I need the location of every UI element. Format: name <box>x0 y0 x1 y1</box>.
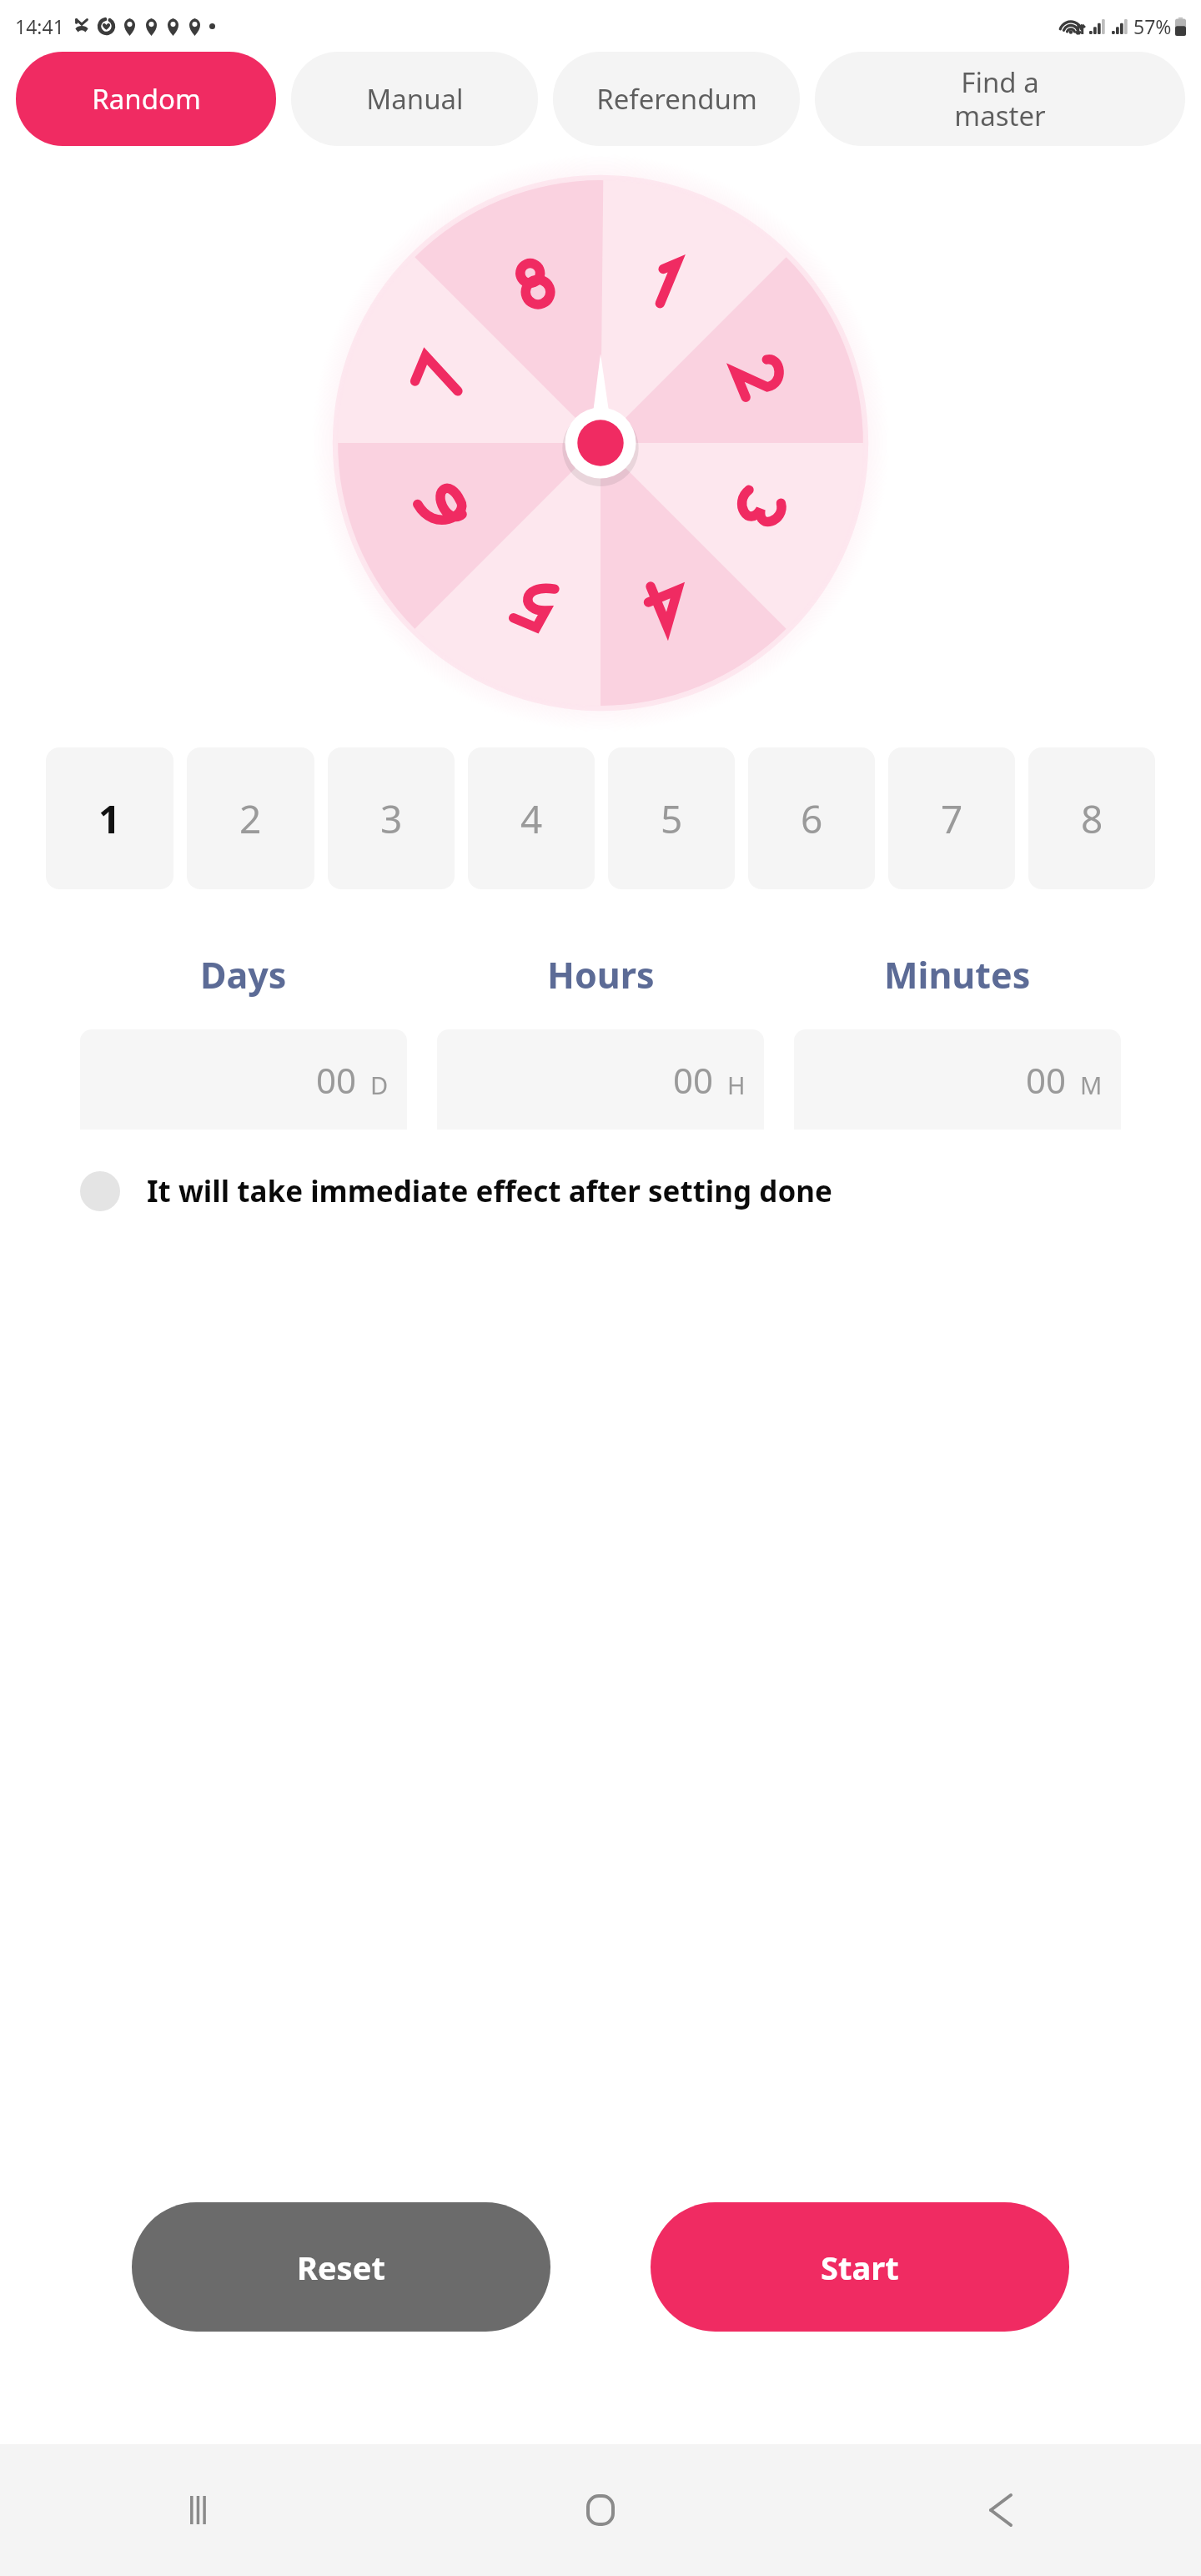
button[interactable]: 1 <box>46 747 173 889</box>
button[interactable]: Home <box>400 2444 801 2576</box>
staticText: 6 <box>801 792 823 845</box>
staticText: Manual <box>366 80 464 118</box>
button[interactable]: 7 <box>888 747 1015 889</box>
staticText: 14:41 <box>15 13 64 39</box>
button[interactable]: Recent apps <box>0 2444 400 2576</box>
button[interactable]: Referendum <box>553 52 800 146</box>
staticText: 8 <box>1081 792 1103 845</box>
staticText: Days <box>200 950 287 999</box>
button[interactable]: 00 <box>437 1029 764 1130</box>
button[interactable]: 8 <box>1028 747 1155 889</box>
button[interactable]: Reset <box>132 2202 550 2332</box>
staticText: 3 <box>380 792 403 845</box>
button[interactable]: 4 <box>468 747 595 889</box>
staticText: Reset <box>297 2246 385 2289</box>
staticText: Start <box>821 2246 899 2289</box>
button[interactable]: Random <box>16 52 276 146</box>
staticText: Referendum <box>596 80 757 118</box>
staticText: 57% <box>1133 13 1172 39</box>
staticText: Random <box>92 80 201 118</box>
button[interactable]: Start <box>651 2202 1069 2332</box>
staticText: Find a master <box>954 63 1046 134</box>
button[interactable]: 00 <box>794 1029 1121 1130</box>
staticText: Hours <box>547 950 655 999</box>
staticText: M <box>1080 1069 1103 1101</box>
staticText: D <box>370 1069 389 1101</box>
button[interactable]: Spin wheel <box>334 176 867 710</box>
staticText: 5 <box>661 792 683 845</box>
staticText: Minutes <box>884 950 1031 999</box>
staticText: 4 <box>520 792 543 845</box>
staticText: 00 <box>316 1056 357 1104</box>
button[interactable]: 00 <box>80 1029 407 1130</box>
staticText: 1 <box>98 792 121 845</box>
staticText: 00 <box>673 1056 714 1104</box>
button[interactable]: 3 <box>328 747 455 889</box>
button[interactable]: 6 <box>748 747 875 889</box>
staticText: It will take immediate effect after sett… <box>147 1171 832 1211</box>
button[interactable]: It will take immediate effect after sett… <box>80 1171 1121 1211</box>
button[interactable]: Back <box>801 2444 1201 2576</box>
staticText: 2 <box>239 792 262 845</box>
button[interactable]: 2 <box>187 747 314 889</box>
button[interactable]: Manual <box>291 52 538 146</box>
button[interactable]: Find a master <box>815 52 1185 146</box>
staticText: H <box>727 1069 746 1101</box>
button[interactable]: 5 <box>608 747 735 889</box>
staticText: 00 <box>1026 1056 1067 1104</box>
staticText: 7 <box>941 792 963 845</box>
